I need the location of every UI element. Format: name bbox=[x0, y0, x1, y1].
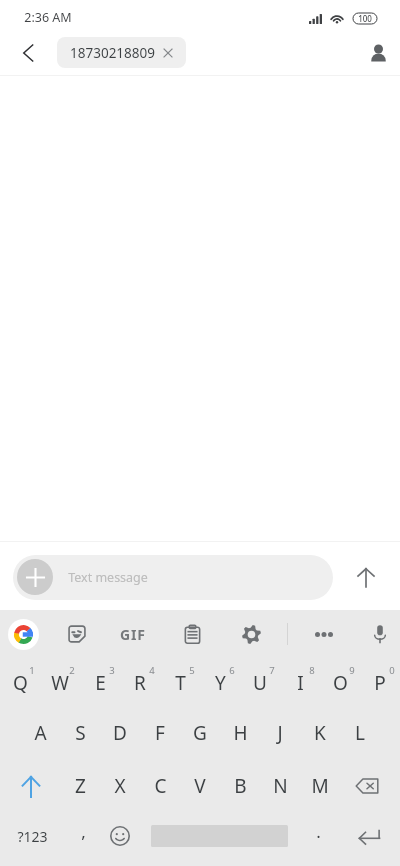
button[interactable]: S bbox=[60, 708, 100, 758]
staticText: X bbox=[114, 773, 126, 799]
staticText: L bbox=[355, 720, 365, 746]
button[interactable]: H bbox=[220, 708, 260, 758]
button[interactable]: Settings bbox=[228, 612, 274, 656]
button[interactable]: Q bbox=[0, 658, 40, 708]
button[interactable]: Contact info bbox=[360, 35, 396, 71]
staticText: 100 bbox=[358, 13, 372, 24]
button[interactable]: Clipboard bbox=[169, 612, 215, 656]
button[interactable]: J bbox=[260, 708, 300, 758]
staticText: I bbox=[297, 670, 304, 696]
button[interactable]: D bbox=[100, 708, 140, 758]
button[interactable]: L bbox=[340, 708, 380, 758]
staticText: , bbox=[81, 820, 86, 843]
staticText: 4 bbox=[149, 664, 155, 677]
staticText: ?123 bbox=[17, 827, 48, 846]
staticText: Y bbox=[215, 670, 226, 696]
staticText: M bbox=[311, 773, 329, 799]
staticText: 2 bbox=[69, 664, 75, 677]
button[interactable]: ?123 bbox=[2, 811, 62, 861]
button[interactable]: U bbox=[240, 658, 280, 708]
button[interactable]: W bbox=[40, 658, 80, 708]
staticText: C bbox=[154, 773, 167, 799]
staticText: GIF bbox=[120, 625, 146, 644]
button[interactable]: Shift bbox=[2, 761, 60, 811]
staticText: A bbox=[34, 720, 47, 746]
button[interactable]: Text message bbox=[13, 555, 333, 600]
button[interactable]: More options bbox=[301, 612, 347, 656]
staticText: 2:36 AM bbox=[24, 9, 72, 26]
button[interactable]: Stickers bbox=[54, 612, 100, 656]
button[interactable]: O bbox=[320, 658, 360, 708]
button[interactable]: Google search bbox=[2, 613, 45, 656]
staticText: V bbox=[194, 773, 206, 799]
staticText: H bbox=[233, 720, 248, 746]
staticText: 5 bbox=[189, 664, 195, 677]
staticText: F bbox=[155, 720, 165, 746]
button[interactable]: I bbox=[280, 658, 320, 708]
staticText: W bbox=[51, 670, 69, 696]
staticText: Z bbox=[75, 773, 86, 799]
staticText: R bbox=[134, 670, 146, 696]
button[interactable]: 18730218809 bbox=[57, 37, 186, 68]
button[interactable]: R bbox=[120, 658, 160, 708]
staticText: 8 bbox=[309, 664, 315, 677]
staticText: E bbox=[95, 670, 106, 696]
staticText: 9 bbox=[349, 664, 355, 677]
button[interactable]: Backspace bbox=[338, 761, 396, 811]
staticText: 18730218809 bbox=[70, 44, 155, 62]
staticText: Q bbox=[13, 670, 28, 696]
staticText: T bbox=[175, 670, 186, 696]
button[interactable]: Back bbox=[10, 35, 46, 71]
button[interactable]: E bbox=[80, 658, 120, 708]
staticText: K bbox=[314, 720, 326, 746]
staticText: 6 bbox=[229, 664, 235, 677]
staticText: J bbox=[277, 720, 283, 746]
staticText: 0 bbox=[389, 664, 395, 677]
button[interactable]: T bbox=[160, 658, 200, 708]
button[interactable]: C bbox=[140, 761, 180, 811]
button[interactable]: , bbox=[64, 811, 102, 861]
button[interactable]: Y bbox=[200, 658, 240, 708]
button[interactable]: Z bbox=[60, 761, 100, 811]
staticText: 3 bbox=[109, 664, 115, 677]
button[interactable]: A bbox=[20, 708, 60, 758]
staticText: U bbox=[253, 670, 267, 696]
staticText: . bbox=[316, 820, 321, 843]
button[interactable]: M bbox=[300, 761, 340, 811]
button[interactable]: GIF bbox=[110, 612, 156, 656]
button[interactable]: G bbox=[180, 708, 220, 758]
staticText: P bbox=[374, 670, 386, 696]
staticText: S bbox=[75, 720, 86, 746]
button[interactable]: K bbox=[300, 708, 340, 758]
staticText: B bbox=[234, 773, 247, 799]
button[interactable]: F bbox=[140, 708, 180, 758]
staticText: 7 bbox=[269, 664, 275, 677]
staticText: G bbox=[193, 720, 207, 746]
button[interactable]: Emoji bbox=[102, 811, 138, 861]
button[interactable]: Attach bbox=[17, 559, 53, 595]
button[interactable]: P bbox=[360, 658, 400, 708]
staticText: Text message bbox=[68, 569, 148, 586]
button[interactable]: N bbox=[260, 761, 300, 811]
staticText: N bbox=[273, 773, 288, 799]
button[interactable]: Voice input bbox=[357, 612, 400, 656]
button[interactable]: . bbox=[300, 811, 336, 861]
button[interactable]: X bbox=[100, 761, 140, 811]
staticText: D bbox=[113, 720, 127, 746]
staticText: 1 bbox=[29, 664, 35, 677]
button[interactable]: Send bbox=[346, 557, 386, 597]
button[interactable]: V bbox=[180, 761, 220, 811]
staticText: O bbox=[333, 670, 348, 696]
button[interactable]: B bbox=[220, 761, 260, 811]
button[interactable]: Enter bbox=[340, 811, 398, 861]
